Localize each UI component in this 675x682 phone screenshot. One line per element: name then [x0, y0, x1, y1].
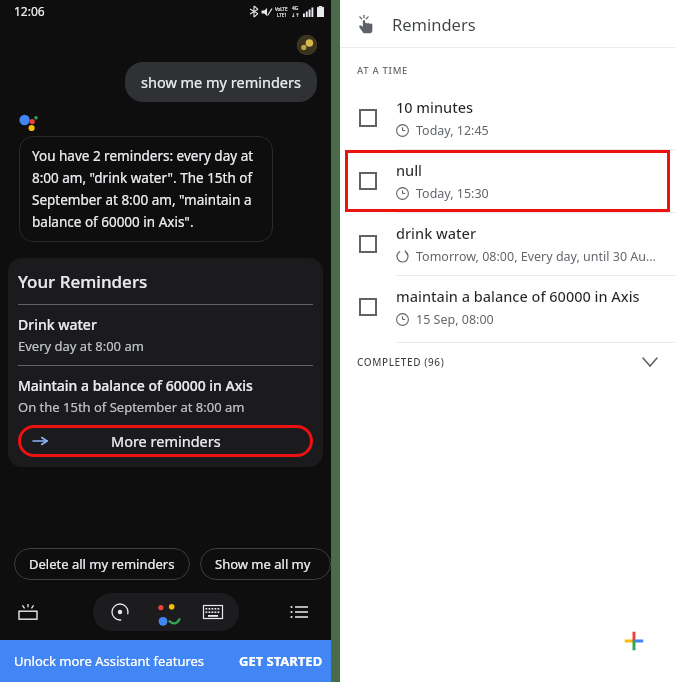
button[interactable]: Show me all my reminders	[200, 548, 331, 580]
button[interactable]: Unlock more Assistant features	[0, 640, 331, 682]
staticText: 4G	[292, 5, 299, 12]
button[interactable]: Mark complete	[340, 276, 675, 338]
staticText: AT A TIME	[357, 64, 409, 77]
staticText: LTE1	[277, 12, 287, 18]
staticText: Maintain a balance of 60000 in Axis	[18, 376, 253, 395]
button[interactable]: More reminders	[18, 425, 313, 457]
staticText: Your Reminders	[18, 270, 148, 293]
button[interactable]: Touch	[351, 10, 379, 38]
staticText: You have 2 reminders: every day at 8:00 …	[32, 147, 260, 231]
button[interactable]: You have 2 reminders: every day at 8:00 …	[19, 136, 273, 242]
staticText: Delete all my reminders	[29, 555, 175, 573]
button[interactable]: Keyboard	[201, 600, 225, 624]
button[interactable]: COMPLETED (96)	[340, 343, 675, 381]
staticText: null	[396, 160, 423, 180]
staticText: Show me all my reminders	[215, 555, 316, 573]
staticText: show me my reminders	[141, 72, 301, 92]
button[interactable]: Mark complete	[359, 298, 377, 316]
staticText: More reminders	[111, 431, 221, 451]
staticText: Today, 12:45	[416, 122, 489, 139]
staticText: Every day at 8:00 am	[18, 337, 144, 355]
button[interactable]: Mark complete	[359, 235, 377, 253]
button[interactable]: Lens	[109, 601, 131, 623]
button[interactable]: Mark complete	[345, 150, 670, 212]
staticText: VoLTE	[275, 6, 288, 12]
staticText: drink water	[396, 223, 477, 243]
button[interactable]: Snapshot	[285, 598, 313, 626]
staticText: GET STARTED	[239, 652, 323, 670]
button[interactable]: Assistant	[151, 599, 181, 625]
staticText: 12:06	[14, 3, 45, 19]
staticText: Today, 15:30	[416, 185, 489, 202]
staticText: COMPLETED (96)	[357, 355, 445, 369]
button[interactable]: Mark complete	[359, 172, 377, 190]
staticText: Unlock more Assistant features	[14, 652, 205, 670]
button[interactable]: show me my reminders	[125, 62, 317, 102]
button[interactable]: Explore	[14, 598, 42, 626]
staticText: 15 Sep, 08:00	[416, 311, 494, 328]
button[interactable]: Mark complete	[359, 109, 377, 127]
button[interactable]: Mark complete	[340, 87, 675, 149]
staticText: On the 15th of September at 8:00 am	[18, 398, 245, 416]
staticText: ↓↑	[291, 12, 300, 18]
staticText: Drink water	[18, 315, 97, 334]
button[interactable]: Delete all my reminders	[14, 548, 190, 580]
button[interactable]: Add reminder	[610, 617, 658, 665]
staticText: Tomorrow, 08:00, Every day, until 30 Aug…	[416, 248, 663, 265]
staticText: maintain a balance of 60000 in Axis	[396, 286, 640, 306]
staticText: Reminders	[392, 13, 476, 35]
staticText: 10 minutes	[396, 97, 474, 117]
button[interactable]: Mark complete	[340, 213, 675, 275]
